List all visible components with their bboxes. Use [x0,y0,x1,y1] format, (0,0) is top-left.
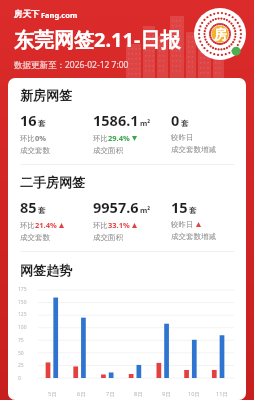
staticText: 5日 [48,390,57,398]
staticText: 150 [18,299,27,306]
staticText: 套 [189,206,197,215]
staticText: 较昨日 [171,220,194,229]
staticText: 21.4% [35,220,57,230]
staticText: 16 [20,110,37,130]
staticText: 成交套数 [20,233,50,242]
staticText: 套 [38,206,46,215]
staticText: 75 [18,337,24,344]
staticText: 0 [171,110,180,130]
staticText: 0% [35,133,47,143]
staticText: 1586.1 [93,110,139,130]
staticText: m² [140,205,151,215]
staticText: 数据更新至：2026-02-12 7:00 [14,59,129,71]
staticText: 套 [181,119,189,128]
staticText: 成交套数 [20,146,50,155]
staticText: 33.1% [108,220,130,230]
staticText: 50 [18,350,24,357]
staticText: 11日 [216,390,228,398]
staticText: Fang.com [41,10,78,20]
staticText: 环比 [20,221,35,230]
staticText: 成交套数增减 [171,145,216,154]
staticText: 25 [18,362,24,369]
staticText: 175 [18,286,27,293]
staticText: 环比 [20,134,35,143]
staticText: 8日 [134,390,143,398]
staticText: 9日 [162,390,171,398]
staticText: 较昨日 [171,133,194,142]
staticText: 套 [38,119,46,128]
staticText: 成交套数增减 [171,232,216,241]
staticText: 10日 [188,390,200,398]
staticText: 成交面积 [93,233,123,242]
staticText: m² [140,118,151,128]
staticText: 0 [18,375,21,382]
staticText: 6日 [77,390,86,398]
button[interactable]: 二手房网签 [8,174,246,242]
staticText: 房天下 [14,9,40,20]
staticText: 7日 [106,390,115,398]
staticText: 东莞网签2.11-日报 [14,26,181,53]
staticText: 125 [18,311,27,318]
staticText: 房 [214,26,227,42]
staticText: 9957.6 [93,197,139,217]
button[interactable]: 房天下 官方印章 [194,8,246,60]
staticText: 环比 [93,221,108,230]
staticText: 100 [18,324,27,331]
button[interactable]: 新房网签 [8,87,246,155]
staticText: 15 [171,197,188,217]
staticText: 成交面积 [93,146,123,155]
staticText: 新房网签 [20,87,72,103]
staticText: 29.4% [108,133,130,143]
staticText: 85 [20,197,37,217]
staticText: 环比 [93,134,108,143]
staticText: 网签趋势 [20,262,72,278]
staticText: 二手房网签 [20,174,85,190]
